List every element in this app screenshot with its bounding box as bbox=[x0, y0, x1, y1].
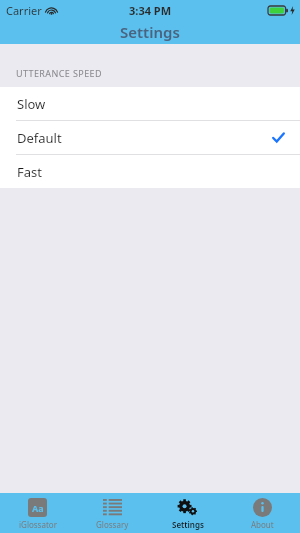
staticText: Fast bbox=[17, 163, 42, 181]
staticText: iGlossator bbox=[19, 519, 57, 530]
staticText: Aa bbox=[32, 502, 44, 514]
staticText: Slow bbox=[17, 95, 46, 113]
button[interactable]: Default bbox=[0, 121, 300, 154]
staticText: Default bbox=[17, 129, 62, 147]
button[interactable]: Settings bbox=[150, 493, 225, 533]
staticText: Glossary bbox=[96, 519, 129, 530]
button[interactable]: Fast bbox=[0, 155, 300, 188]
button[interactable]: Glossary bbox=[75, 493, 150, 533]
button[interactable]: Aa bbox=[0, 493, 75, 533]
staticText: About bbox=[251, 519, 274, 530]
staticText: Settings bbox=[172, 519, 204, 530]
button[interactable]: Slow bbox=[0, 87, 300, 120]
staticText: 3:34 PM bbox=[129, 3, 172, 18]
button[interactable]: About bbox=[225, 493, 300, 533]
staticText: Settings bbox=[120, 22, 180, 42]
staticText: Carrier bbox=[6, 3, 42, 18]
staticText: UTTERANCE SPEED bbox=[16, 67, 102, 79]
